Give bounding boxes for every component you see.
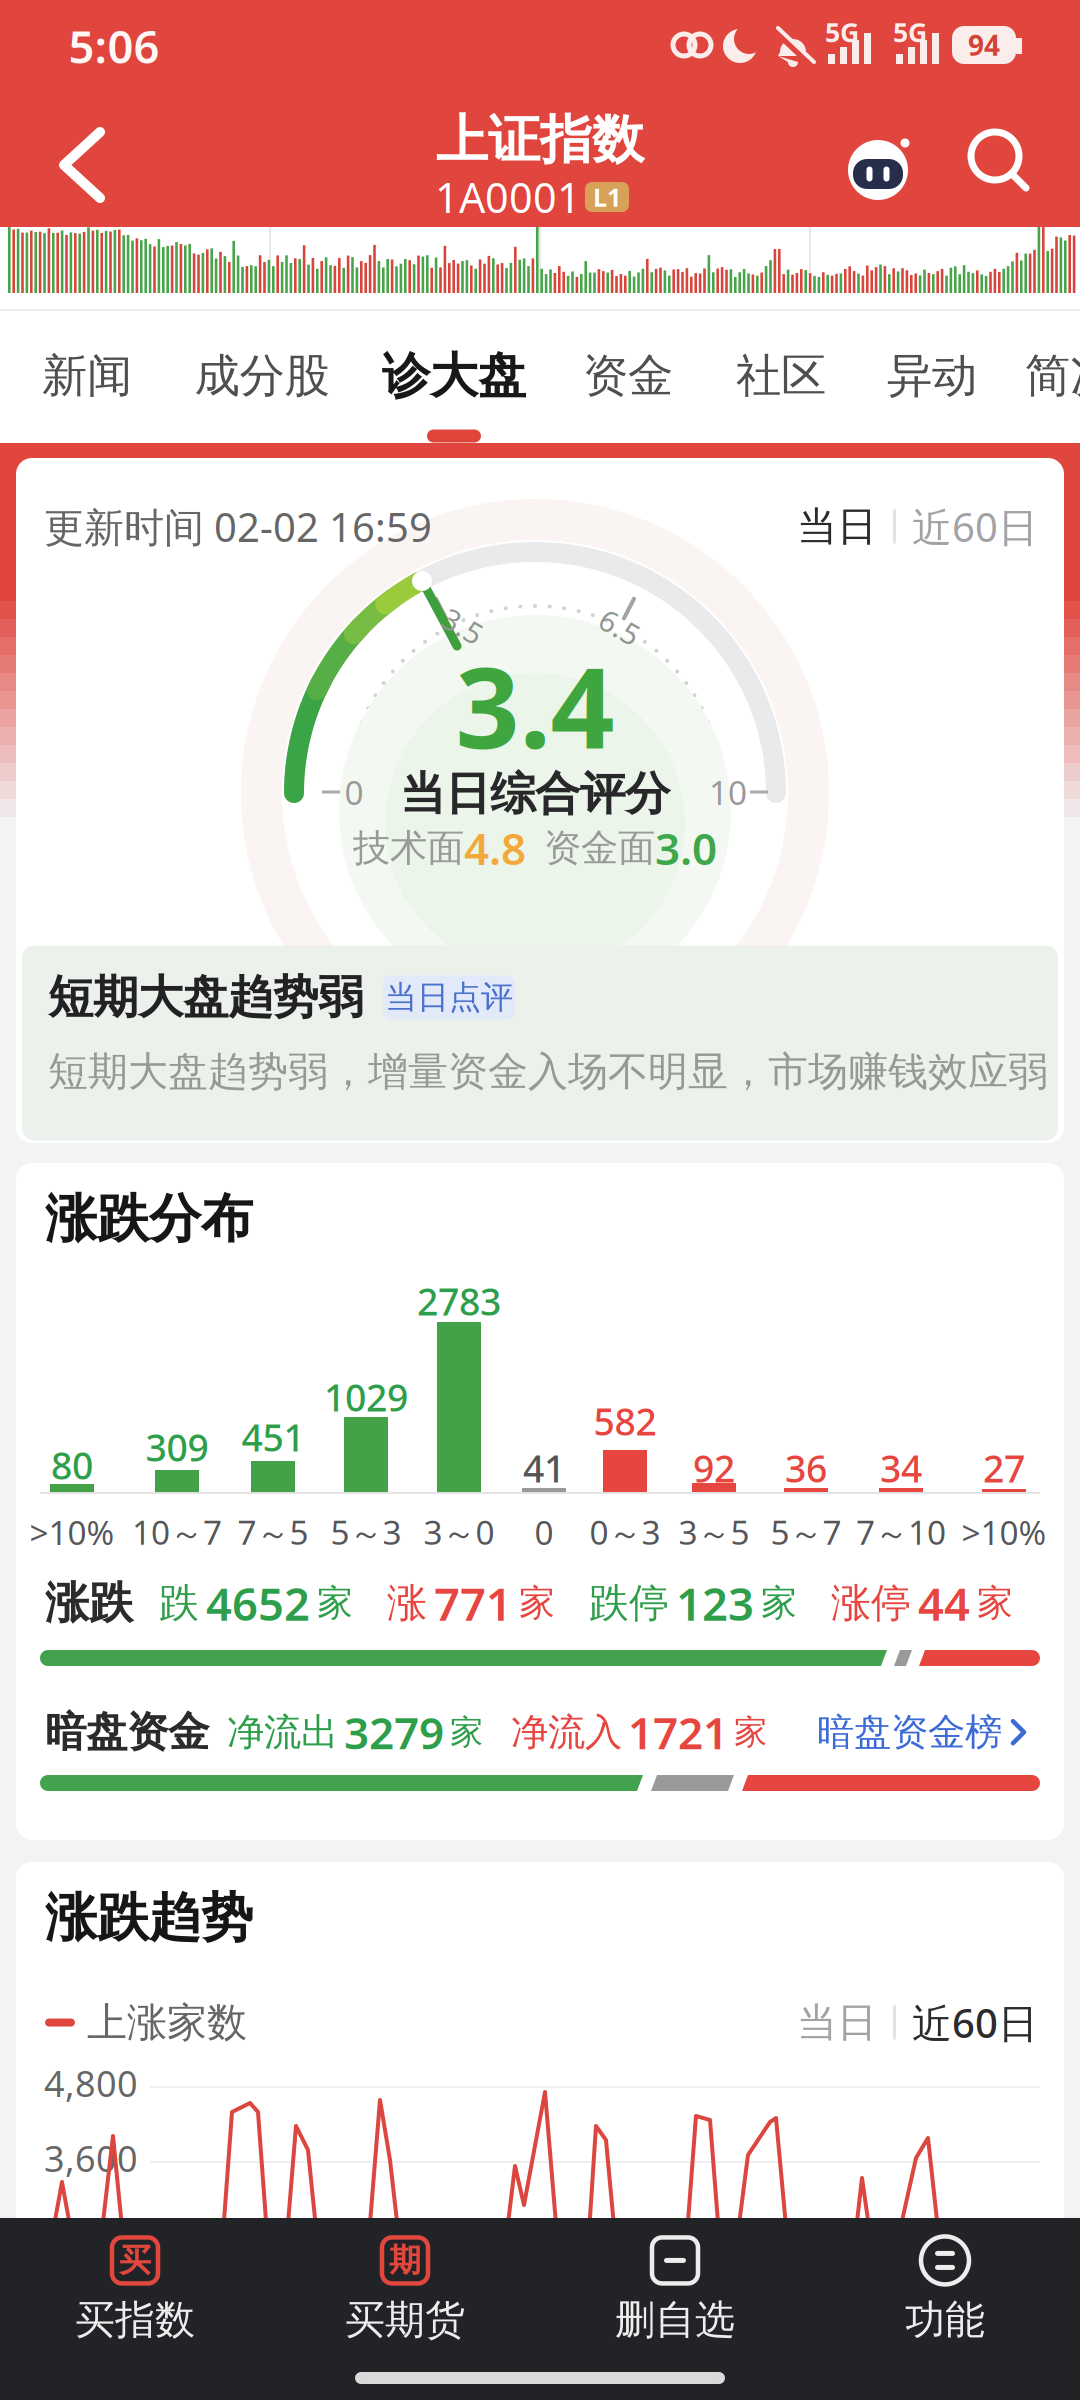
button[interactable]: 暗盘资金榜 [817,1709,1028,1755]
staticText: 家 [734,1712,767,1753]
staticText: 3.5 [442,606,484,645]
staticText: 上证指数 [436,108,644,172]
button[interactable]: AI assistant [843,135,913,205]
staticText: 涨停 [831,1578,911,1628]
staticText: 暗盘资金 [45,1707,209,1758]
button[interactable]: 异动 [887,348,977,404]
staticText: 5～3 [330,1510,401,1554]
staticText: 简况 [1025,348,1080,404]
staticText: 买期货 [345,2295,465,2344]
staticText: 4.8 [464,819,526,877]
staticText: 资金 [583,348,673,404]
staticText: 成分股 [194,348,329,404]
staticText: 3.0 [655,819,717,877]
staticText: 5G [893,14,927,50]
staticText: 27 [983,1443,1025,1493]
button[interactable]: Search [963,126,1039,202]
staticText: 7～5 [237,1510,308,1554]
staticText: 当日 [797,502,877,551]
staticText: 1A0001 [435,170,581,224]
staticText: 家 [317,1581,353,1625]
button[interactable]: 近60日 [912,1996,1038,2049]
staticText: 0 [534,1510,553,1554]
staticText: 买 [119,2241,151,2280]
staticText: 涨跌分布 [45,1187,253,1251]
staticText: 1721 [628,1703,728,1761]
staticText: 家 [519,1581,555,1625]
button[interactable]: 成分股 [194,348,329,404]
staticText: 36 [785,1443,827,1493]
button[interactable]: 资金 [583,348,673,404]
staticText: 582 [593,1396,656,1446]
staticText: 涨跌趋势 [45,1886,253,1950]
staticText: 4652 [206,1573,310,1633]
staticText: 5G [825,14,859,50]
button[interactable]: 近60日 [912,500,1038,553]
button[interactable]: Back [46,120,126,210]
staticText: 净流出 [227,1709,338,1755]
staticText: 上涨家数 [87,1998,247,2047]
staticText: 涨 [387,1578,427,1628]
staticText: 123 [676,1573,754,1633]
staticText: 功能 [905,2295,985,2344]
staticText: 期 [389,2241,421,2280]
staticText: 当日综合评分 [400,766,670,822]
staticText: 家 [761,1581,797,1625]
staticText: 3～5 [678,1510,749,1554]
staticText: 短期大盘趋势弱 [48,969,363,1025]
staticText: 0 [344,770,363,814]
staticText: 暗盘资金榜 [817,1709,1002,1755]
button[interactable]: 新闻 [42,348,132,404]
staticText: 3.4 [455,631,614,779]
staticText: 94 [968,26,1000,64]
staticText: 资金面 [544,825,655,871]
button[interactable]: 当日 [797,1998,877,2047]
staticText: 涨跌 [45,1576,133,1630]
staticText: 短期大盘趋势弱，增量资金入场不明显，市场赚钱效应弱 [48,1047,1048,1096]
staticText: 10 [709,770,747,814]
staticText: 5:06 [68,16,159,76]
staticText: 异动 [887,348,977,404]
staticText: 7～10 [856,1510,946,1554]
button[interactable]: 诊大盘 [382,346,526,405]
staticText: 净流入 [511,1709,622,1755]
button[interactable]: 功能 [810,2233,1080,2344]
staticText: 0～3 [589,1510,660,1554]
staticText: 社区 [736,348,826,404]
staticText: 诊大盘 [382,346,526,405]
staticText: L1 [593,180,621,214]
staticText: 92 [693,1443,735,1493]
staticText: 家 [450,1712,483,1753]
staticText: 3,600 [44,2134,138,2182]
staticText: 4,800 [44,2059,138,2107]
staticText: >10% [29,1510,114,1554]
staticText: 41 [523,1443,565,1493]
button[interactable]: 买 [0,2233,270,2344]
staticText: 3～0 [423,1510,494,1554]
staticText: 近60日 [912,500,1038,553]
staticText: 删自选 [615,2295,735,2344]
button[interactable]: 期 [270,2233,540,2344]
staticText: 买指数 [75,2295,195,2344]
button[interactable]: 社区 [736,348,826,404]
staticText: 451 [241,1412,304,1462]
staticText: 771 [434,1573,512,1633]
staticText: >10% [961,1510,1046,1554]
staticText: 5～7 [770,1510,841,1554]
button[interactable]: 简况 [1025,348,1080,404]
staticText: 10～7 [132,1510,222,1554]
staticText: 当日 [797,1998,877,2047]
staticText: 技术面 [353,825,464,871]
staticText: 当日点评 [385,978,513,1017]
staticText: 1029 [324,1372,408,1422]
staticText: 跌 [159,1578,199,1628]
button[interactable]: 当日 [797,502,877,551]
staticText: 更新时间 02-02 16:59 [44,500,432,553]
staticText: 80 [51,1440,93,1490]
staticText: 309 [145,1422,208,1472]
staticText: 近60日 [912,1996,1038,2049]
button[interactable]: 删自选 [540,2233,810,2344]
staticText: 34 [880,1443,922,1493]
staticText: 44 [918,1573,970,1633]
staticText: 跌停 [589,1578,669,1628]
